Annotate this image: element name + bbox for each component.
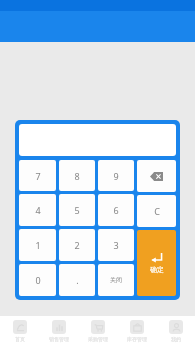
button[interactable]: 关闭 xyxy=(98,264,134,296)
staticText: 1 xyxy=(35,239,41,251)
staticText: 确定 xyxy=(150,265,164,274)
staticText: 销售管理 xyxy=(49,336,69,342)
button[interactable] xyxy=(19,124,176,156)
staticText: 采购管理 xyxy=(88,336,108,342)
button[interactable]: 3 xyxy=(98,229,134,261)
button[interactable]: 销售管理 xyxy=(39,316,78,346)
staticText: 0 xyxy=(35,274,41,286)
staticText: 3 xyxy=(113,239,119,251)
staticText: 我的 xyxy=(171,336,181,342)
button[interactable]: 6 xyxy=(98,194,134,226)
button[interactable]: Backspace xyxy=(137,160,176,192)
button[interactable]: C xyxy=(137,195,176,227)
staticText: 4 xyxy=(35,204,41,216)
button[interactable]: 5 xyxy=(59,194,95,226)
button[interactable]: 我的 xyxy=(156,316,195,346)
button[interactable]: 0 xyxy=(19,264,56,296)
button[interactable]: 2 xyxy=(59,229,95,261)
staticText: 5 xyxy=(74,204,80,216)
staticText: 关闭 xyxy=(110,276,122,284)
button[interactable]: 首页 xyxy=(0,316,39,346)
staticText: 2 xyxy=(74,239,80,251)
staticText: C xyxy=(154,205,160,217)
button[interactable]: . xyxy=(59,264,95,296)
staticText: 6 xyxy=(113,204,119,216)
staticText: . xyxy=(76,274,79,286)
button[interactable]: 8 xyxy=(59,160,95,191)
button[interactable]: 1 xyxy=(19,229,56,261)
button[interactable]: 7 xyxy=(19,160,56,191)
staticText: 9 xyxy=(113,170,119,182)
button[interactable]: 4 xyxy=(19,194,56,226)
button[interactable]: 9 xyxy=(98,160,134,191)
staticText: 7 xyxy=(35,170,41,182)
staticText: 库存管理 xyxy=(127,336,147,342)
button[interactable]: 采购管理 xyxy=(78,316,117,346)
button[interactable]: 确定 xyxy=(137,230,176,296)
staticText: 8 xyxy=(74,170,80,182)
staticText: 首页 xyxy=(15,336,25,342)
button[interactable]: 库存管理 xyxy=(117,316,156,346)
